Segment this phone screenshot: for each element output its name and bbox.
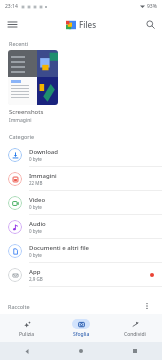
button[interactable]: Altre opzioni bbox=[140, 299, 154, 313]
button[interactable]: App bbox=[0, 263, 162, 286]
staticText: Download bbox=[29, 148, 58, 156]
button[interactable]: Sfoglia bbox=[54, 314, 108, 342]
staticText: Categorie bbox=[9, 133, 35, 140]
staticText: 23:14 bbox=[5, 3, 18, 10]
staticText: Pulizia bbox=[19, 331, 35, 338]
staticText: Files bbox=[79, 19, 97, 30]
staticText: Immagini bbox=[29, 172, 57, 180]
staticText: 2,9 GB bbox=[29, 276, 43, 282]
staticText: Condividi bbox=[124, 331, 146, 338]
button[interactable]: Immagini bbox=[0, 167, 162, 190]
button[interactable]: Menu bbox=[4, 16, 20, 32]
staticText: 0 byte bbox=[29, 204, 42, 210]
staticText: Sfoglia bbox=[73, 331, 90, 338]
staticText: Recenti bbox=[9, 40, 29, 47]
staticText: Screenshots bbox=[9, 108, 44, 116]
button[interactable]: Cerca bbox=[142, 16, 158, 32]
staticText: Video bbox=[29, 196, 46, 204]
button[interactable]: Documenti e altri file bbox=[0, 239, 162, 262]
button[interactable]: Condividi bbox=[108, 314, 162, 342]
staticText: Audio bbox=[29, 220, 46, 228]
staticText: Raccolte bbox=[8, 303, 30, 310]
button[interactable]: Video bbox=[0, 191, 162, 214]
button[interactable] bbox=[8, 50, 58, 105]
staticText: 22 MB bbox=[29, 180, 43, 186]
button[interactable]: Audio bbox=[0, 215, 162, 238]
button[interactable]: Download bbox=[0, 143, 162, 166]
button[interactable]: Pulizia bbox=[0, 314, 54, 342]
staticText: App bbox=[29, 268, 41, 276]
staticText: 0 byte bbox=[29, 156, 42, 162]
staticText: 0 byte bbox=[29, 252, 42, 258]
staticText: 0 byte bbox=[29, 228, 42, 234]
staticText: Documenti e altri file bbox=[29, 244, 90, 252]
staticText: Immagini bbox=[9, 117, 32, 124]
staticText: 93% bbox=[147, 3, 157, 10]
